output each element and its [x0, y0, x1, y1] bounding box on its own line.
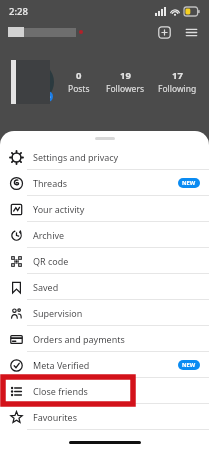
staticText: Your activity — [33, 203, 85, 215]
staticText: 0 — [76, 69, 82, 82]
button[interactable]: Menu — [181, 22, 201, 42]
staticText: QR code — [33, 255, 69, 267]
button[interactable]: Saved — [0, 274, 209, 300]
staticText: Archive — [33, 229, 65, 241]
staticText: Threads — [33, 177, 68, 189]
button[interactable]: Favourites — [0, 404, 209, 430]
staticText: NEW — [182, 361, 196, 369]
button[interactable]: Meta Verified — [0, 352, 209, 378]
button[interactable]: QR code — [0, 248, 209, 274]
staticText: Settings and privacy — [33, 151, 119, 163]
staticText: 19 — [120, 69, 131, 82]
button[interactable]: Orders and payments — [0, 326, 209, 352]
staticText: NEW — [182, 179, 196, 187]
staticText: 2:28 — [9, 5, 28, 18]
button[interactable]: Your activity — [0, 196, 209, 222]
button[interactable]: Settings and privacy — [0, 144, 209, 170]
staticText: Orders and payments — [33, 333, 125, 345]
button[interactable]: Archive — [0, 222, 209, 248]
staticText: Following — [158, 83, 197, 95]
staticText: 17 — [172, 69, 183, 82]
button[interactable]: Close friends — [0, 378, 209, 404]
staticText: Favourites — [33, 411, 77, 423]
staticText: Meta Verified — [33, 359, 90, 371]
staticText: Close friends — [33, 385, 88, 397]
staticText: Saved — [33, 281, 59, 293]
button[interactable]: Supervision — [0, 300, 209, 326]
button[interactable]: Threads — [0, 170, 209, 196]
staticText: Supervision — [33, 307, 83, 319]
staticText: Followers — [106, 83, 144, 95]
staticText: Posts — [68, 83, 90, 95]
button[interactable]: New post — [154, 22, 174, 42]
